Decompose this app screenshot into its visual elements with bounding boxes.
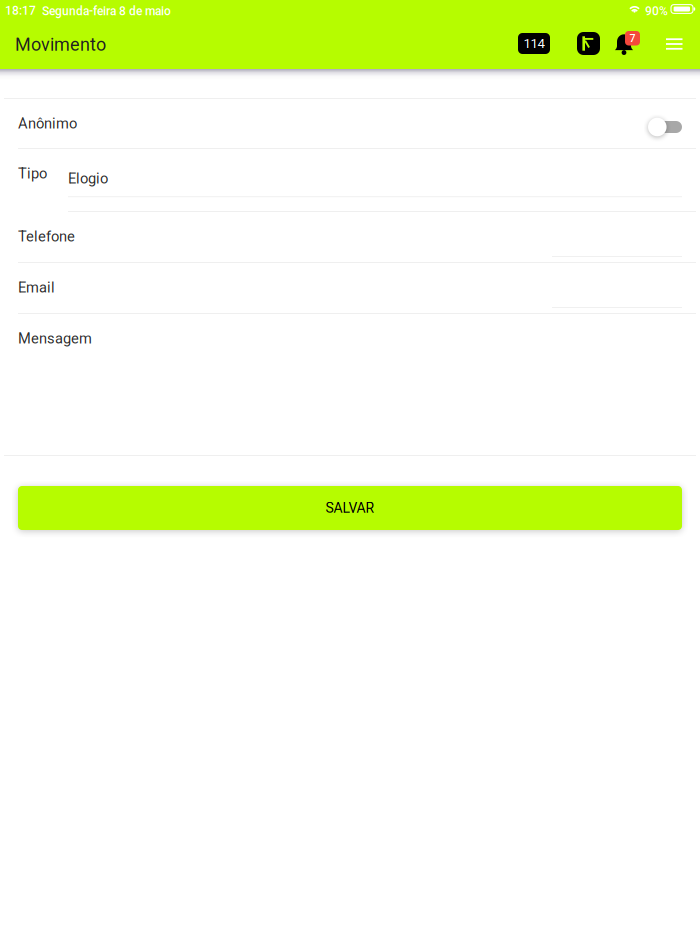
button[interactable]: Notificações [614, 31, 642, 57]
staticText: Mensagem [18, 330, 92, 347]
staticText: SALVAR [325, 500, 374, 516]
staticText: Anônimo [18, 115, 77, 132]
staticText: Movimento [15, 34, 106, 55]
staticText: 18:17 [5, 3, 36, 18]
button[interactable]: Anônimo [648, 117, 682, 137]
staticText: Email [18, 279, 55, 296]
button[interactable]: Aplicativo [577, 32, 600, 55]
staticText: 7 [629, 32, 635, 44]
button[interactable]: Menu [660, 32, 690, 58]
button[interactable]: SALVAR [18, 486, 682, 530]
staticText: 90% [645, 4, 668, 18]
staticText: Tipo [18, 165, 47, 182]
staticText: Telefone [18, 228, 75, 245]
button[interactable]: 114 [518, 33, 550, 54]
staticText: Segunda-feira 8 de maio [42, 4, 171, 18]
staticText: 114 [523, 36, 544, 51]
staticText: Elogio [68, 170, 108, 187]
